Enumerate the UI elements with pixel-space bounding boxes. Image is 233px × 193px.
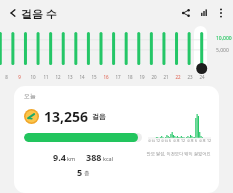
staticText: 20 (151, 74, 157, 80)
staticText: 11 (43, 74, 49, 80)
button[interactable]: More options (213, 5, 229, 21)
staticText: 16 (103, 74, 109, 80)
staticText: 9 (18, 74, 21, 80)
button[interactable]: Share (177, 4, 195, 22)
staticText: 10 (30, 74, 36, 80)
staticText: 걸음 수 (21, 6, 57, 21)
staticText: 21 (163, 74, 169, 80)
staticText: 8 (5, 74, 8, 80)
staticText: 13 (67, 74, 73, 80)
staticText: 17 (115, 74, 121, 80)
button[interactable]: Back (4, 4, 22, 22)
staticText: 걸음 (92, 112, 106, 121)
staticText: 5,000 (216, 47, 229, 54)
staticText: 오후 12 (199, 138, 211, 143)
button[interactable]: 오늘 (14, 86, 219, 193)
staticText: 18 (127, 74, 133, 80)
staticText: 19 (139, 74, 145, 80)
staticText: 12 (55, 74, 61, 80)
staticText: 22 (175, 74, 181, 80)
staticText: kcal (103, 155, 114, 162)
staticText: 388 (86, 151, 102, 163)
staticText: km (67, 155, 76, 162)
staticText: 9.4 (53, 151, 66, 163)
button[interactable]: Chart (195, 4, 213, 22)
staticText: 24 (199, 74, 205, 80)
staticText: 층 (84, 170, 90, 177)
staticText: 오후 6 (187, 138, 197, 143)
staticText: 13,256 (44, 107, 89, 126)
staticText: 오늘 (24, 92, 36, 100)
staticText: 23 (187, 74, 193, 80)
staticText: 15 (91, 74, 97, 80)
staticText: 오전 12 (148, 138, 160, 143)
staticText: 오전 6 (161, 138, 171, 143)
staticText: 10,000 (216, 35, 232, 42)
staticText: 만보 달성, 이전보다 많이 걸었어요 (146, 151, 211, 157)
staticText: 5 (77, 166, 83, 178)
staticText: 오후 12 (173, 138, 185, 143)
button[interactable] (194, 26, 207, 73)
staticText: 14 (79, 74, 85, 80)
